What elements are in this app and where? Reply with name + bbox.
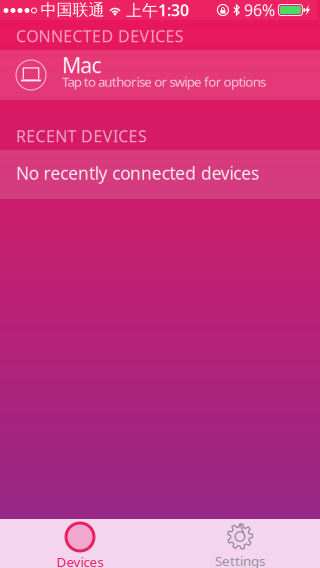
- staticText: 上午1:30: [126, 0, 189, 21]
- staticText: 中国联通: [40, 0, 104, 20]
- staticText: RECENT DEVICES: [16, 125, 147, 147]
- button[interactable]: Settings: [160, 519, 320, 568]
- staticText: No recently connected devices: [16, 161, 259, 184]
- button[interactable]: Mac: [0, 50, 320, 100]
- staticText: Tap to authorise or swipe for options: [62, 73, 266, 90]
- staticText: CONNECTED DEVICES: [16, 25, 184, 47]
- button[interactable]: Devices: [0, 519, 160, 568]
- staticText: Settings: [215, 552, 265, 568]
- staticText: Mac: [62, 51, 102, 79]
- staticText: Devices: [56, 553, 103, 568]
- staticText: 96%: [244, 0, 275, 21]
